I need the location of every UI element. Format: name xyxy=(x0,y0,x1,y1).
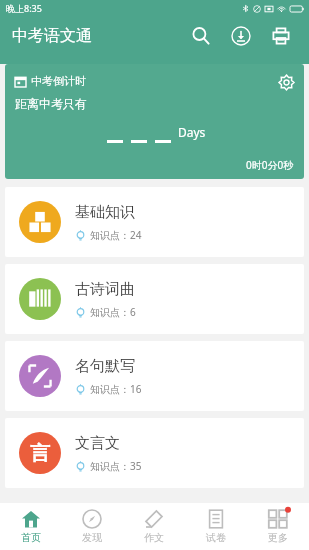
staticText: 0时0分0秒 xyxy=(246,158,294,172)
staticText: 基础知识 xyxy=(75,203,135,222)
staticText: 晚上8:35 xyxy=(6,2,42,14)
staticText: 中考倒计时 xyxy=(31,74,86,88)
staticText: 文言文 xyxy=(75,434,120,453)
staticText: 中考语文通 xyxy=(12,26,92,46)
button[interactable]: 首页 xyxy=(0,503,61,550)
button[interactable]: Settings xyxy=(274,70,298,94)
button[interactable]: Print xyxy=(261,16,301,56)
button[interactable]: 试卷 xyxy=(185,503,247,550)
button[interactable]: Download xyxy=(221,16,261,56)
staticText: 发现 xyxy=(82,531,102,544)
staticText: 知识点：6 xyxy=(90,305,136,319)
staticText: Days xyxy=(178,124,206,140)
staticText: 首页 xyxy=(21,531,41,544)
staticText: 距离中考只有 xyxy=(15,96,87,111)
button[interactable]: 更多 xyxy=(247,503,309,550)
staticText: 试卷 xyxy=(206,531,226,544)
staticText: 古诗词曲 xyxy=(75,280,135,299)
button[interactable]: 古诗词曲 xyxy=(5,264,304,334)
button[interactable]: 言 xyxy=(5,418,304,488)
button[interactable]: 基础知识 xyxy=(5,187,304,257)
button[interactable]: 中考倒计时 xyxy=(5,64,304,179)
staticText: 名句默写 xyxy=(75,357,135,376)
staticText: 更多 xyxy=(268,531,288,544)
staticText: 知识点：16 xyxy=(90,382,142,396)
button[interactable]: Search xyxy=(181,16,221,56)
staticText: 言 xyxy=(30,441,50,466)
button[interactable]: 名句默写 xyxy=(5,341,304,411)
staticText: 作文 xyxy=(144,531,164,544)
button[interactable]: 作文 xyxy=(123,503,185,550)
button[interactable]: 发现 xyxy=(61,503,123,550)
staticText: 知识点：24 xyxy=(90,228,142,242)
staticText: 知识点：35 xyxy=(90,459,142,473)
